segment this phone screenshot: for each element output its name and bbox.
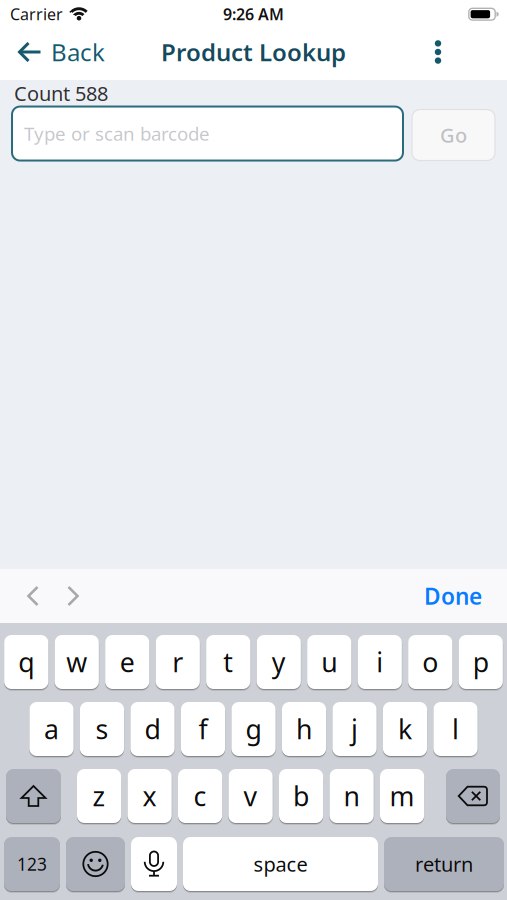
staticText: 123 <box>17 852 47 875</box>
staticText: y <box>272 644 286 680</box>
button[interactable]: v <box>228 769 273 823</box>
staticText: r <box>172 644 183 680</box>
button[interactable]: o <box>408 635 452 689</box>
button[interactable]: Delete <box>446 769 500 823</box>
staticText: l <box>452 711 459 747</box>
button[interactable]: a <box>29 702 74 756</box>
button[interactable]: 123 <box>4 837 60 891</box>
staticText: Carrier <box>10 3 63 25</box>
button[interactable]: z <box>77 769 121 823</box>
staticText: p <box>473 644 489 680</box>
staticText: Product Lookup <box>161 36 346 68</box>
staticText: f <box>198 711 207 747</box>
staticText: s <box>95 711 108 747</box>
staticText: o <box>422 644 438 680</box>
button[interactable]: Dictate <box>131 837 177 891</box>
staticText: g <box>245 711 261 747</box>
button[interactable]: Type or scan barcode <box>12 107 403 161</box>
staticText: Go <box>440 122 467 148</box>
staticText: e <box>120 644 135 680</box>
button[interactable]: Next field <box>40 585 80 606</box>
button[interactable]: Shift <box>6 769 61 823</box>
button[interactable]: q <box>4 635 48 689</box>
button[interactable]: return <box>384 837 504 891</box>
staticText: a <box>44 711 59 747</box>
button[interactable]: n <box>329 769 374 823</box>
staticText: Done <box>424 581 482 611</box>
button[interactable]: k <box>383 702 427 756</box>
button[interactable]: Go <box>412 110 495 161</box>
button[interactable]: p <box>459 635 503 689</box>
staticText: v <box>244 778 258 814</box>
staticText: x <box>143 778 157 814</box>
staticText: h <box>296 711 312 747</box>
button[interactable]: u <box>307 635 351 689</box>
staticText: w <box>66 644 87 680</box>
staticText: Back <box>51 36 105 68</box>
staticText: k <box>398 711 412 747</box>
staticText: u <box>321 644 337 680</box>
staticText: d <box>144 711 160 747</box>
staticText: j <box>351 711 358 747</box>
button[interactable]: y <box>257 635 301 689</box>
staticText: space <box>253 851 307 877</box>
button[interactable]: l <box>433 702 478 756</box>
button[interactable]: w <box>55 635 99 689</box>
staticText: i <box>376 644 383 680</box>
button[interactable]: m <box>380 769 424 823</box>
button[interactable]: s <box>80 702 124 756</box>
staticText: Type or scan barcode <box>24 121 210 146</box>
button[interactable]: Emoji <box>66 837 125 891</box>
button[interactable]: b <box>279 769 323 823</box>
button[interactable]: More options <box>428 38 507 66</box>
staticText: n <box>344 778 360 814</box>
staticText: c <box>194 778 207 814</box>
staticText: q <box>18 644 34 680</box>
staticText: return <box>415 851 473 877</box>
staticText: 9:26 AM <box>223 3 284 25</box>
button[interactable]: j <box>332 702 377 756</box>
button[interactable]: Done <box>424 581 507 611</box>
button[interactable]: c <box>178 769 222 823</box>
staticText: Count 588 <box>14 80 108 107</box>
button[interactable]: f <box>181 702 225 756</box>
button[interactable]: space <box>183 837 378 891</box>
button[interactable]: d <box>130 702 175 756</box>
button[interactable]: r <box>156 635 200 689</box>
staticText: z <box>93 778 106 814</box>
button[interactable]: g <box>231 702 276 756</box>
button[interactable]: x <box>127 769 172 823</box>
staticText: t <box>223 644 233 680</box>
button[interactable]: Back <box>0 36 105 68</box>
button[interactable]: h <box>282 702 326 756</box>
button[interactable]: i <box>358 635 402 689</box>
button[interactable]: Previous field <box>0 585 40 606</box>
button[interactable]: e <box>105 635 149 689</box>
staticText: m <box>390 778 415 814</box>
staticText: b <box>293 778 309 814</box>
button[interactable]: t <box>206 635 250 689</box>
